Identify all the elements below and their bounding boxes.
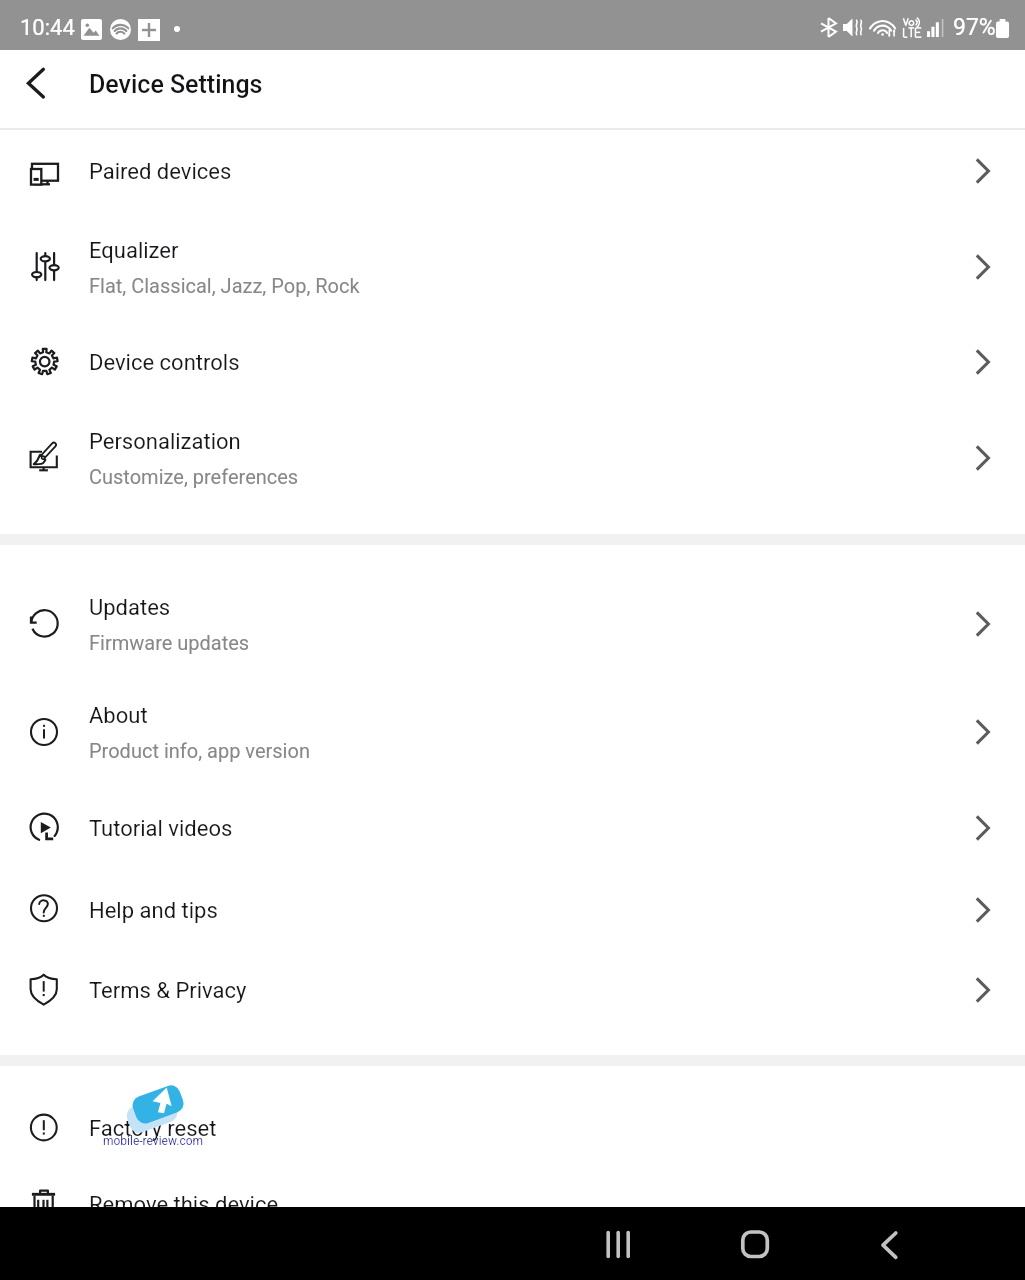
button[interactable]	[0, 1166, 1025, 1240]
staticText: Factory reset	[89, 1116, 217, 1142]
button[interactable]	[0, 212, 1025, 320]
button[interactable]	[0, 545, 1025, 678]
button[interactable]: Back	[16, 60, 56, 100]
staticText: Firmware updates	[89, 631, 250, 654]
button[interactable]	[0, 1066, 1025, 1166]
staticText: Customize, preferences	[89, 465, 299, 488]
staticText: Updates	[89, 595, 171, 621]
staticText: Flat, Classical, Jazz, Pop, Rock	[89, 274, 360, 297]
staticText: Product info, app version	[89, 739, 310, 762]
staticText: mobile-review.com	[103, 1134, 204, 1148]
button[interactable]: Back	[868, 1221, 916, 1269]
staticText: Help and tips	[89, 898, 218, 924]
button[interactable]	[0, 678, 1025, 790]
button[interactable]	[0, 870, 1025, 952]
staticText: About	[89, 703, 148, 729]
button[interactable]	[0, 320, 1025, 404]
staticText: Equalizer	[89, 238, 179, 264]
staticText: Remove this device	[89, 1192, 279, 1218]
button[interactable]: Home	[730, 1221, 778, 1269]
button[interactable]	[0, 50, 1025, 128]
button[interactable]	[0, 952, 1025, 1055]
button[interactable]	[0, 790, 1025, 870]
staticText: 97%	[953, 14, 996, 41]
staticText: 10:44	[20, 15, 75, 41]
button[interactable]: Recent apps	[594, 1221, 642, 1269]
staticText: Paired devices	[89, 159, 232, 185]
staticText: Personalization	[89, 429, 241, 455]
staticText: Tutorial videos	[89, 816, 233, 842]
button[interactable]	[0, 130, 1025, 212]
staticText: Device Settings	[89, 70, 263, 99]
staticText: Terms & Privacy	[89, 978, 247, 1004]
staticText: Device controls	[89, 350, 240, 376]
button[interactable]	[0, 404, 1025, 534]
